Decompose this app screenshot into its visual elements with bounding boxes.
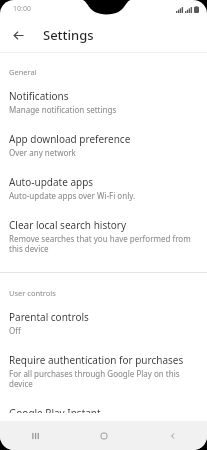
button[interactable]: App download preference (0, 123, 207, 166)
staticText: Require authentication for purchases (9, 353, 184, 367)
staticText: Manage notification settings (9, 104, 117, 115)
staticText: Auto-update apps (9, 175, 94, 189)
button[interactable]: Clear local search history (0, 209, 207, 262)
button[interactable]: Home (69, 421, 138, 450)
button[interactable]: Recent apps (0, 421, 69, 450)
staticText: Google Play Instant (9, 406, 101, 413)
button[interactable]: Auto-update apps (0, 166, 207, 209)
button[interactable]: Google Play Instant (0, 397, 207, 421)
staticText: 10:00 (13, 4, 31, 14)
staticText: Parental controls (9, 310, 89, 324)
staticText: User controls (9, 288, 56, 298)
staticText: Settings (43, 26, 94, 44)
staticText: For all purchases through Google Play on… (9, 368, 198, 389)
button[interactable]: Parental controls (0, 301, 207, 344)
button[interactable]: Require authentication for purchases (0, 344, 207, 397)
button[interactable]: Back (8, 25, 28, 45)
button[interactable]: Back (138, 421, 207, 450)
staticText: Remove searches that you have performed … (9, 233, 198, 254)
staticText: Off (9, 325, 21, 336)
staticText: App download preference (9, 132, 131, 146)
button[interactable]: Notifications (0, 80, 207, 123)
staticText: General (9, 67, 37, 77)
staticText: Over any network (9, 147, 76, 158)
staticText: Auto-update apps over Wi-Fi only. (9, 190, 136, 201)
staticText: Clear local search history (9, 218, 127, 232)
staticText: Notifications (9, 89, 69, 103)
